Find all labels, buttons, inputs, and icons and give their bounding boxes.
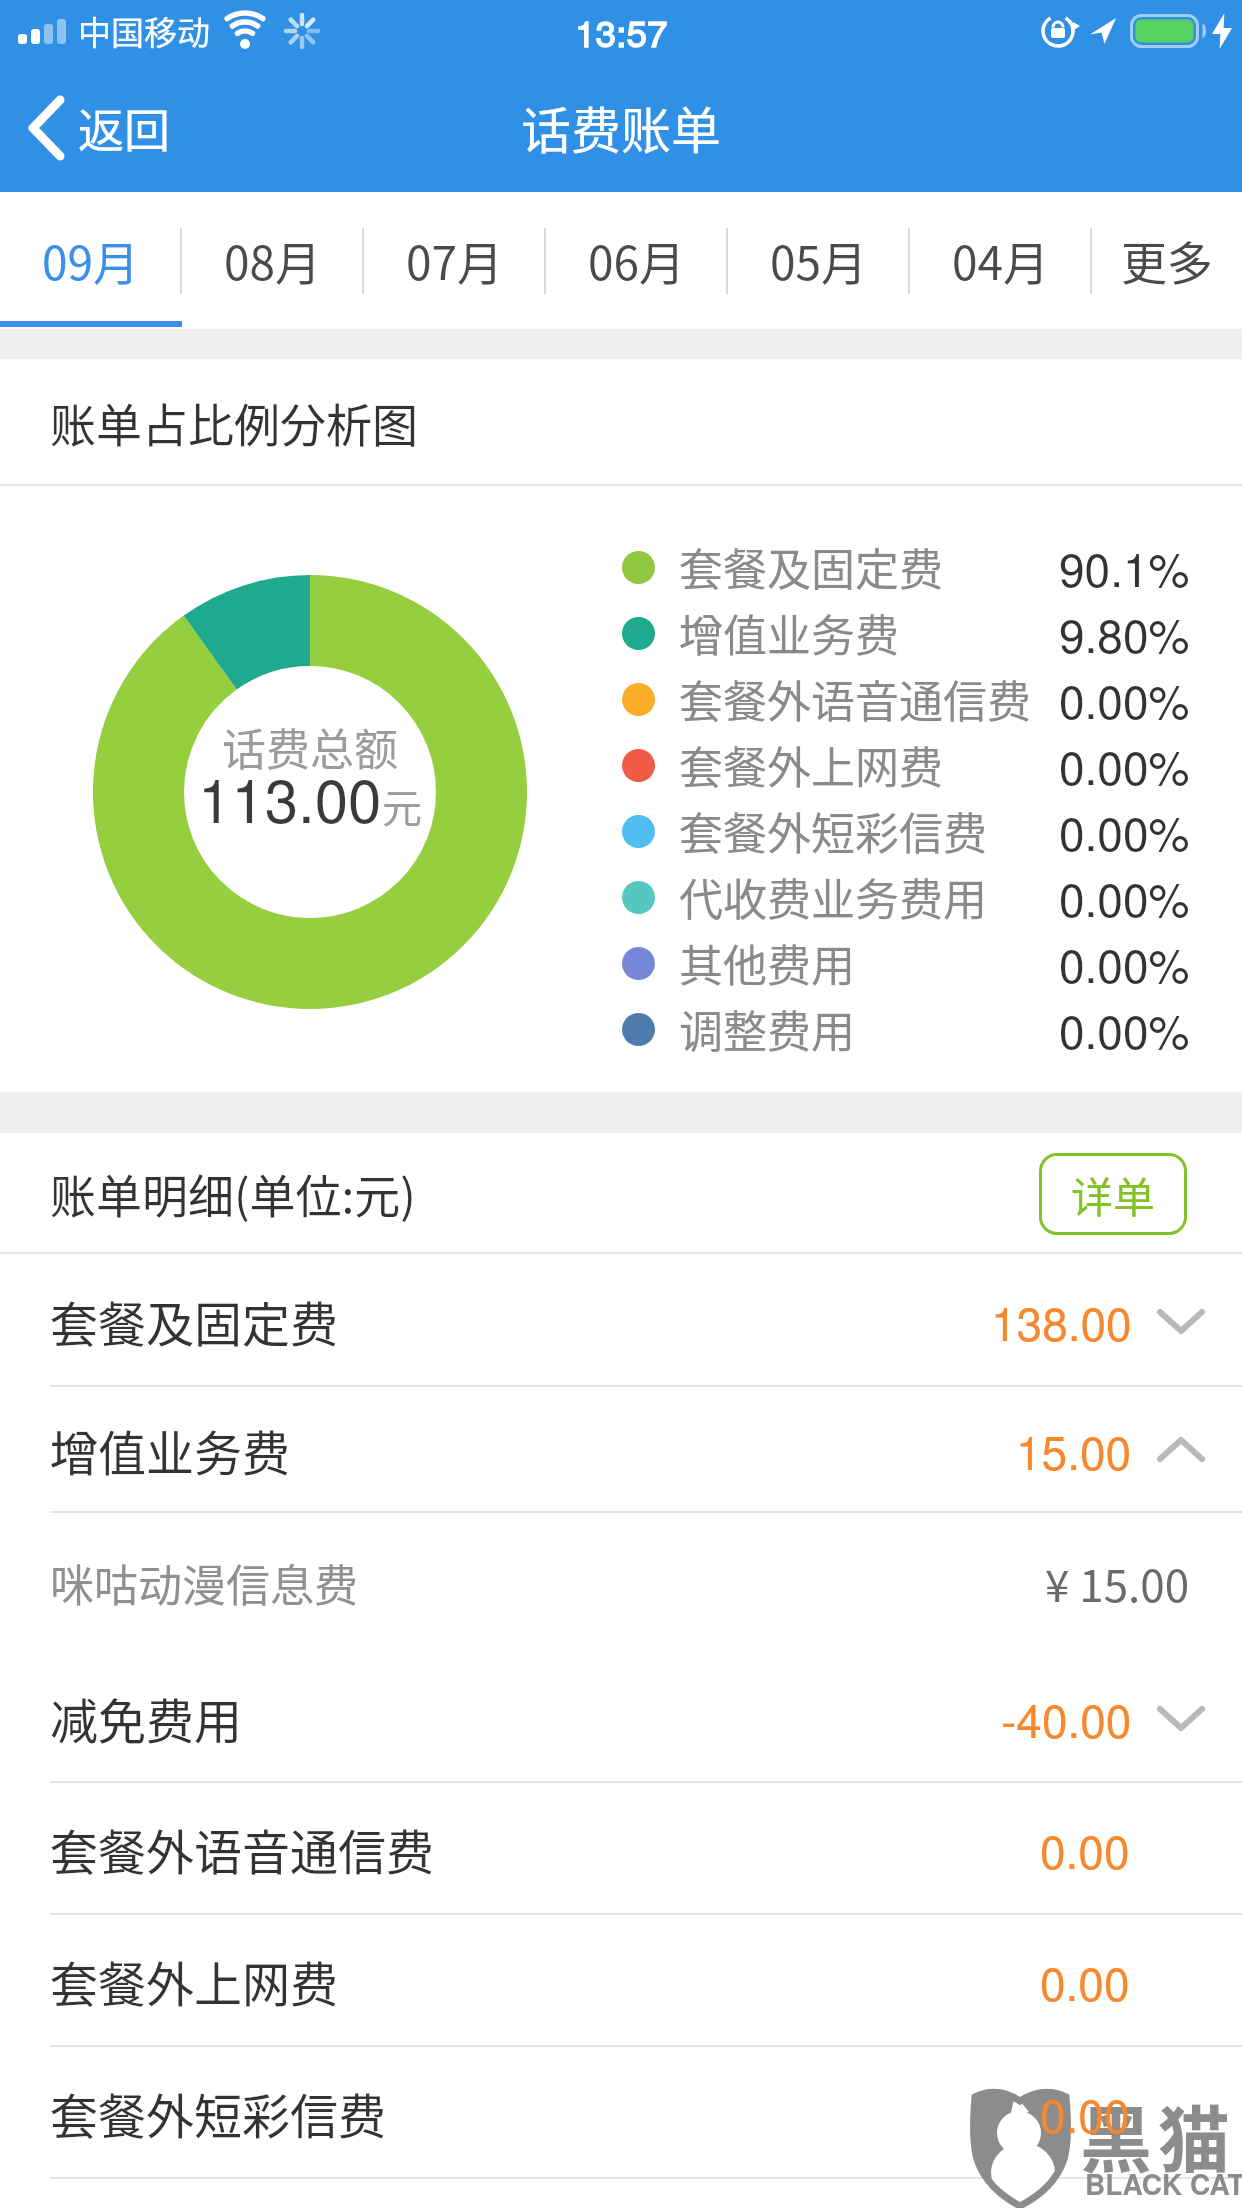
staticText: -40.00 (1001, 1685, 1132, 1751)
staticText: 减免费用 (50, 1683, 243, 1753)
staticText: 套餐外短彩信费 (50, 2078, 387, 2148)
staticText: 0.00 (1040, 2080, 1130, 2146)
staticText: 13:57 (575, 5, 668, 58)
staticText: 90.1% (1059, 534, 1190, 600)
staticText: 账单明细(单位:元) (50, 1160, 416, 1227)
button[interactable]: 更多 (1092, 192, 1242, 329)
staticText: 07月 (406, 227, 504, 294)
staticText: 9.80% (1059, 600, 1190, 666)
button[interactable]: 06月 (546, 192, 728, 329)
button[interactable]: 套餐外上网费 (0, 1915, 1242, 2047)
staticText: 套餐外短彩信费 (679, 799, 987, 863)
staticText: 话费账单 (521, 91, 721, 163)
staticText: 113.00 (198, 754, 382, 840)
staticText: 增值业务费 (50, 1415, 291, 1485)
button[interactable]: 套餐及固定费 (0, 1254, 1242, 1387)
staticText: 套餐外上网费 (50, 1946, 339, 2016)
staticText: 08月 (224, 227, 322, 294)
staticText: 元 (382, 777, 422, 835)
staticText: 138.00 (991, 1288, 1132, 1354)
staticText: 其他费用 (679, 931, 855, 995)
staticText: 06月 (588, 227, 686, 294)
staticText: 0.00% (1059, 798, 1190, 864)
staticText: 调整费用 (679, 997, 855, 1061)
button[interactable]: 套餐外短彩信费 (0, 2047, 1242, 2179)
staticText: 套餐及固定费 (679, 535, 943, 599)
staticText: 返回 (78, 94, 170, 161)
button[interactable]: 详单 (1039, 1153, 1187, 1235)
staticText: 套餐及固定费 (50, 1286, 339, 1356)
staticText: 黑猫 (1080, 2082, 1237, 2186)
staticText: 咪咕动漫信息费 (50, 1551, 358, 1615)
staticText: 15.00 (1016, 1417, 1132, 1483)
staticText: 0.00 (1040, 1816, 1130, 1882)
staticText: 05月 (770, 227, 868, 294)
staticText: BLACK CAT (1085, 2163, 1242, 2203)
staticText: 09月 (42, 227, 140, 294)
staticText: 0.00% (1059, 930, 1190, 996)
staticText: 套餐外上网费 (679, 733, 943, 797)
button[interactable]: 08月 (182, 192, 364, 329)
button[interactable]: 05月 (728, 192, 910, 329)
button[interactable]: 09月 (0, 192, 182, 329)
staticText: 话费总额 (222, 715, 398, 779)
staticText: 中国移动 (78, 7, 210, 55)
staticText: 套餐外语音通信费 (50, 1814, 435, 1884)
button[interactable]: 减免费用 (0, 1653, 1242, 1783)
staticText: 详单 (1071, 1164, 1156, 1225)
button[interactable]: 04月 (910, 192, 1092, 329)
staticText: ¥ 15.00 (1045, 1551, 1190, 1615)
button[interactable]: 07月 (364, 192, 546, 329)
staticText: 0.00% (1059, 996, 1190, 1062)
staticText: 0.00% (1059, 732, 1190, 798)
button[interactable]: 套餐外语音通信费 (0, 1783, 1242, 1915)
button[interactable]: 增值业务费 (0, 1387, 1242, 1513)
staticText: 0.00% (1059, 864, 1190, 930)
staticText: 0.00% (1059, 666, 1190, 732)
staticText: 0.00 (1040, 1948, 1130, 2014)
staticText: 账单占比例分析图 (50, 389, 418, 456)
staticText: 更多 (1121, 227, 1213, 294)
staticText: 代收费业务费用 (679, 865, 987, 929)
staticText: 套餐外语音通信费 (679, 667, 1031, 731)
staticText: 04月 (952, 227, 1050, 294)
staticText: 增值业务费 (679, 601, 899, 665)
button[interactable]: 返回 (28, 94, 170, 161)
